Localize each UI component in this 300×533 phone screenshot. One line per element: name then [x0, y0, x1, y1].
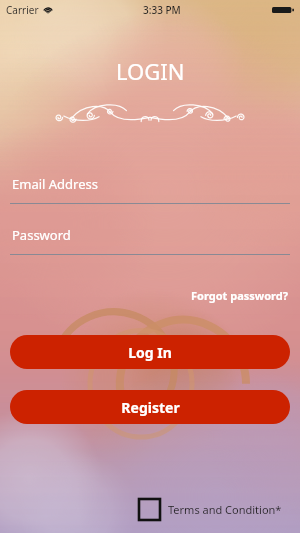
staticText: Email Address — [12, 175, 98, 193]
staticText: 3:33 PM — [143, 3, 181, 17]
staticText: LOGIN — [116, 56, 185, 86]
staticText: Register — [121, 398, 180, 417]
button[interactable]: Forgot password? — [189, 286, 290, 305]
staticText: Log In — [128, 343, 172, 362]
staticText: Terms and Condition* — [168, 502, 282, 517]
button[interactable]: Email Address — [10, 175, 290, 204]
staticText: Carrier — [6, 3, 39, 17]
button[interactable]: Password — [10, 226, 290, 255]
button[interactable]: Terms and Condition* — [138, 498, 300, 521]
staticText: Forgot password? — [191, 288, 288, 303]
button[interactable]: Register — [10, 390, 290, 424]
button[interactable]: Log In — [10, 335, 290, 369]
staticText: Password — [12, 226, 71, 244]
